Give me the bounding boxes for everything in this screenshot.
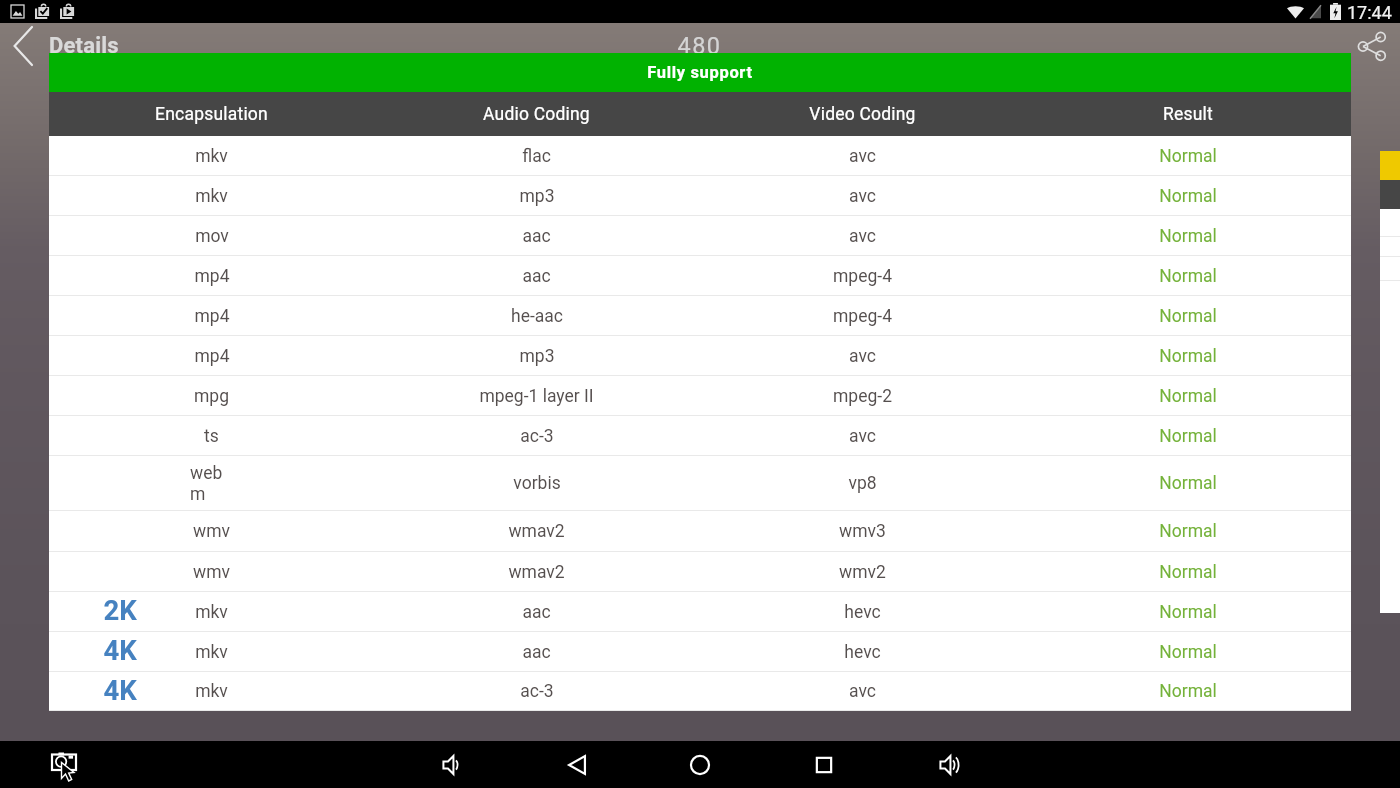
staticText: aac — [522, 266, 551, 287]
staticText: mpeg-4 — [833, 306, 892, 327]
staticText: mkv — [195, 186, 228, 207]
staticText: wmv — [193, 562, 230, 583]
staticText: Normal — [1159, 386, 1217, 407]
staticText: vp8 — [848, 473, 877, 494]
button[interactable]: Volume up — [927, 743, 971, 787]
button[interactable]: web m — [49, 456, 1351, 511]
staticText: ac-3 — [520, 681, 554, 702]
staticText: mpeg-2 — [833, 386, 892, 407]
staticText: aac — [522, 602, 551, 623]
staticText: mov — [195, 226, 229, 247]
staticText: ac-3 — [520, 426, 554, 447]
button[interactable]: mp4 — [49, 256, 1351, 296]
staticText: Result — [1163, 104, 1213, 125]
button[interactable]: mov — [49, 216, 1351, 256]
staticText: wmav2 — [508, 562, 565, 583]
staticText: flac — [522, 146, 551, 167]
staticText: 4K — [103, 634, 137, 666]
staticText: Normal — [1159, 186, 1217, 207]
staticText: Encapsulation — [155, 104, 268, 125]
staticText: wmv2 — [839, 562, 886, 583]
button[interactable]: Recents — [802, 743, 846, 787]
button[interactable]: Back — [555, 743, 599, 787]
staticText: ts — [204, 426, 219, 447]
button[interactable]: ts — [49, 416, 1351, 456]
staticText: mp3 — [519, 186, 555, 207]
button[interactable]: mp4 — [49, 296, 1351, 336]
staticText: mpg — [194, 386, 229, 407]
staticText: wmav2 — [508, 521, 565, 542]
staticText: hevc — [844, 602, 881, 623]
staticText: hevc — [844, 642, 881, 663]
staticText: Normal — [1159, 681, 1217, 702]
button[interactable]: Fully support — [49, 53, 1351, 92]
staticText: avc — [849, 146, 876, 167]
staticText: Normal — [1159, 146, 1217, 167]
staticText: vorbis — [513, 473, 561, 494]
button[interactable]: mp4 — [49, 336, 1351, 376]
staticText: avc — [849, 186, 876, 207]
staticText: Normal — [1159, 562, 1217, 583]
staticText: 17:44 — [1347, 2, 1392, 23]
button[interactable]: mkv — [49, 592, 1351, 632]
staticText: Normal — [1159, 521, 1217, 542]
staticText: 2K — [103, 594, 137, 626]
button[interactable]: Home — [678, 743, 722, 787]
staticText: mkv — [195, 681, 228, 702]
staticText: mkv — [195, 602, 228, 623]
staticText: 4K — [103, 674, 137, 706]
staticText: Fully support — [647, 63, 753, 82]
staticText: mp4 — [194, 306, 230, 327]
staticText: Normal — [1159, 642, 1217, 663]
button[interactable]: Share — [1349, 23, 1395, 68]
button[interactable]: Volume down — [430, 743, 474, 787]
staticText: Normal — [1159, 226, 1217, 247]
staticText: Video Coding — [809, 104, 916, 125]
staticText: aac — [522, 226, 551, 247]
staticText: mkv — [195, 146, 228, 167]
staticText: mpeg-4 — [833, 266, 892, 287]
staticText: web m — [190, 463, 223, 505]
staticText: avc — [849, 681, 876, 702]
staticText: avc — [849, 226, 876, 247]
button[interactable]: mkv — [49, 176, 1351, 216]
staticText: mpeg-1 layer II — [479, 386, 594, 407]
staticText: wmv3 — [839, 521, 886, 542]
staticText: mp4 — [194, 346, 230, 367]
staticText: avc — [849, 346, 876, 367]
button[interactable]: mkv — [49, 136, 1351, 176]
staticText: avc — [849, 426, 876, 447]
staticText: Normal — [1159, 473, 1217, 494]
staticText: Normal — [1159, 266, 1217, 287]
staticText: Normal — [1159, 346, 1217, 367]
button[interactable]: mpg — [49, 376, 1351, 416]
button[interactable]: wmv — [49, 511, 1351, 552]
staticText: mkv — [195, 642, 228, 663]
staticText: Audio Coding — [483, 104, 590, 125]
staticText: 480 — [677, 32, 722, 60]
staticText: mp4 — [194, 266, 230, 287]
staticText: he-aac — [511, 306, 563, 327]
button[interactable]: Back — [0, 23, 46, 68]
staticText: Normal — [1159, 602, 1217, 623]
staticText: aac — [522, 642, 551, 663]
staticText: mp3 — [519, 346, 555, 367]
button[interactable]: mkv — [49, 632, 1351, 672]
staticText: Normal — [1159, 426, 1217, 447]
button[interactable]: Screenshot — [44, 745, 84, 785]
staticText: Normal — [1159, 306, 1217, 327]
button[interactable]: wmv — [49, 552, 1351, 592]
button[interactable]: mkv — [49, 672, 1351, 711]
staticText: Details — [49, 33, 119, 59]
staticText: wmv — [193, 521, 230, 542]
